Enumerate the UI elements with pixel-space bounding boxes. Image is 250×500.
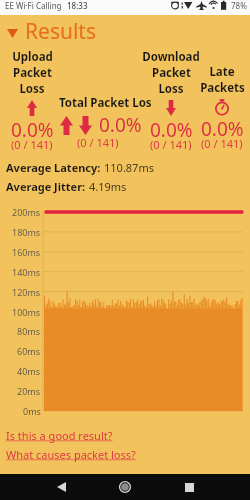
staticText: 40ms (17, 365, 41, 377)
staticText: Average Latency: (6, 160, 104, 175)
staticText: 78% (231, 0, 247, 11)
button[interactable]: Total Packet Loss (58, 95, 150, 150)
staticText: 0.0% (11, 117, 54, 143)
staticText: 0.0% (150, 117, 193, 143)
staticText: EE Wi·Fi Calling (5, 0, 62, 11)
staticText: 0ms (23, 405, 41, 417)
button[interactable]: Is this a good result? (6, 428, 113, 443)
staticText: Late (209, 64, 235, 80)
staticText: 120ms (12, 286, 41, 298)
staticText: Results (25, 17, 97, 46)
staticText: 18:33 (67, 0, 88, 11)
staticText: Download (142, 49, 200, 65)
staticText: 0.0% (201, 116, 244, 142)
staticText: Upload (12, 49, 53, 65)
staticText: What causes packet loss? (6, 447, 136, 462)
button[interactable]: What causes packet loss? (6, 447, 136, 462)
staticText: 200ms (12, 206, 41, 218)
staticText: (0 / 141) (201, 136, 243, 151)
staticText: Packet (13, 65, 52, 81)
button[interactable]: Recents (175, 474, 203, 500)
button[interactable]: Upload (0, 49, 77, 158)
staticText: Average Jitter: (6, 179, 89, 194)
staticText: 80ms (17, 325, 41, 337)
staticText: 160ms (12, 246, 41, 258)
staticText: Packets (200, 80, 245, 96)
staticText: 0.0% (99, 112, 142, 138)
staticText: Total Packet Loss (59, 95, 151, 111)
staticText: 60ms (17, 345, 41, 357)
staticText: 110.87ms (104, 160, 154, 175)
staticText: (0 / 141) (11, 137, 53, 152)
button[interactable]: Results (0, 15, 250, 47)
staticText: 140ms (12, 266, 41, 278)
staticText: 100ms (12, 306, 41, 318)
staticText: Packet (152, 65, 191, 81)
button[interactable]: Back (47, 474, 75, 500)
staticText: (0 / 141) (150, 137, 192, 152)
button[interactable]: Late Packets (177, 64, 250, 157)
staticText: 180ms (12, 226, 41, 238)
button[interactable]: Home (111, 474, 139, 500)
staticText: Is this a good result? (6, 428, 113, 443)
staticText: 4.19ms (89, 179, 127, 194)
button[interactable]: Download (126, 49, 216, 158)
staticText: 20ms (17, 385, 41, 397)
staticText: Loss (158, 81, 184, 97)
staticText: Loss (19, 81, 45, 97)
staticText: (0 / 141) (77, 135, 119, 150)
